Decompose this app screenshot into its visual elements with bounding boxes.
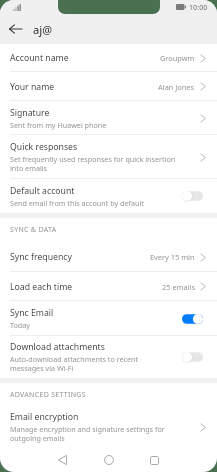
button[interactable]: Account name <box>0 44 217 72</box>
button[interactable]: Home <box>98 449 120 471</box>
staticText: Groupwm <box>160 53 195 63</box>
staticText: 25 emails <box>162 282 195 292</box>
button[interactable]: Default account <box>0 179 217 213</box>
staticText: Email encryption <box>10 411 79 423</box>
button[interactable]: Load each time <box>0 272 217 301</box>
staticText: Today <box>10 320 30 330</box>
button[interactable]: Email encryption <box>0 407 217 447</box>
staticText: Set frequently used responses for quick … <box>10 154 187 173</box>
staticText: Account name <box>10 52 69 64</box>
staticText: Signature <box>10 107 50 119</box>
button[interactable]: Recent apps <box>143 449 165 471</box>
staticText: Manage encryption and signature settings… <box>10 424 187 443</box>
staticText: Default account <box>10 185 75 197</box>
staticText: Your name <box>10 81 55 93</box>
button[interactable]: Download attachments <box>0 336 217 378</box>
staticText: Sync frequency <box>10 251 72 263</box>
button[interactable]: Toggle off <box>182 351 203 363</box>
button[interactable]: Signature <box>0 101 217 135</box>
button[interactable]: Back <box>51 449 73 471</box>
staticText: ADVANCED SETTINGS <box>10 390 86 400</box>
staticText: Download attachments <box>10 341 105 353</box>
button[interactable]: Your name <box>0 72 217 101</box>
button[interactable]: Sync Email <box>0 301 217 336</box>
staticText: SYNC & DATA <box>10 225 57 235</box>
button[interactable]: Toggle on <box>182 313 203 325</box>
staticText: Send email from this account by default <box>10 198 144 208</box>
staticText: Every 15 min <box>150 252 195 262</box>
staticText: 10:00 <box>189 2 208 12</box>
button[interactable]: Sync frequency <box>0 242 217 272</box>
button[interactable]: Toggle off <box>182 190 203 202</box>
staticText: Sync Email <box>10 307 54 319</box>
staticText: Quick responses <box>10 141 78 153</box>
staticText: aj@ <box>33 22 53 37</box>
staticText: Sent from my Huawei phone <box>10 120 107 130</box>
button[interactable]: Quick responses <box>0 135 217 179</box>
staticText: Alan Jones <box>158 82 195 92</box>
button[interactable]: Back <box>0 14 30 44</box>
staticText: Auto-download attachments to recent mess… <box>10 354 166 373</box>
staticText: Load each time <box>10 281 73 293</box>
